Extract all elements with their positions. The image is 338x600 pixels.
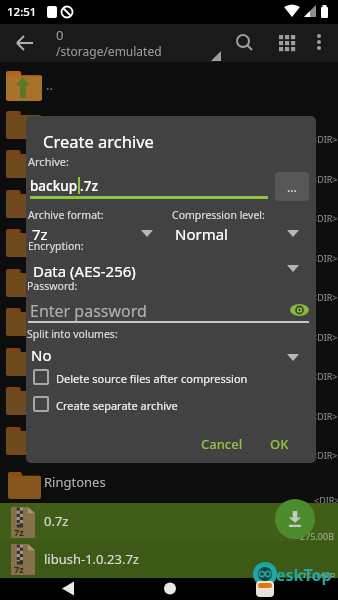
staticText: <DIR> [312,252,338,264]
staticText: <DIR> [312,133,338,145]
button[interactable] [148,578,192,600]
staticText: .7z [80,177,98,195]
staticText: 7z [32,224,48,244]
staticText: <DIR> [312,410,338,422]
button[interactable] [46,578,90,600]
staticText: 7z [14,526,24,538]
staticText: libush-1.0.23.7z [44,550,139,568]
staticText: ... [287,179,297,195]
button[interactable]: Data (AES-256) [26,257,316,279]
button[interactable]: Normal [170,222,316,244]
button[interactable]: No [26,343,316,367]
staticText: <DIR> [312,370,338,382]
button[interactable] [228,24,260,62]
staticText: Compression level: [172,208,265,222]
button[interactable]: .. [0,64,338,104]
staticText: .. [46,76,53,94]
button[interactable]: 7z [26,222,164,244]
staticText: OK [270,435,289,453]
button[interactable]: Ringtones [0,464,338,503]
staticText: No [31,345,52,365]
staticText: 475.04KB [296,570,336,582]
button[interactable]: Cancel [196,431,248,457]
staticText: 7z [14,563,24,575]
button[interactable]: Create separate archive [33,395,316,413]
staticText: 0 [56,26,64,44]
staticText: 0.7z [44,512,69,530]
button[interactable]: 7z [0,541,338,578]
staticText: 12:51 [7,4,37,20]
staticText: <DIR> [312,212,338,224]
staticText: Create archive [43,130,154,152]
button[interactable] [306,24,338,62]
button[interactable]: ... [275,172,309,201]
staticText: backup [30,177,78,195]
staticText: <DIR> [312,173,338,185]
staticText: <DIR> [312,291,338,303]
staticText: Normal [175,224,228,244]
staticText: Ringtones [44,473,106,491]
staticText: <DIR> [314,494,338,506]
staticText: <DIR> [312,449,338,461]
staticText: Split into volumes: [27,327,118,341]
staticText: 275.00B [300,530,335,542]
button[interactable] [290,303,309,317]
button[interactable]: OK [262,431,296,457]
button[interactable]: Delete source files after compression [33,368,316,386]
staticText: Encryption: [28,239,84,253]
button[interactable] [0,24,48,62]
staticText: <DIR> [312,331,338,343]
staticText: eskTop [276,564,332,586]
staticText: Archive format: [28,208,104,222]
staticText: Delete source files after compression [56,371,248,386]
button[interactable] [275,499,315,539]
staticText: Enter password [30,300,147,322]
staticText: Archive: [28,154,70,169]
staticText: Data (AES-256) [33,261,136,281]
staticText: /storage/emulated [56,43,162,59]
staticText: Cancel [201,435,243,453]
button[interactable] [266,24,304,62]
staticText: Create separate archive [56,398,178,413]
staticText: Password: [27,279,78,293]
button[interactable]: 7z [0,503,338,541]
